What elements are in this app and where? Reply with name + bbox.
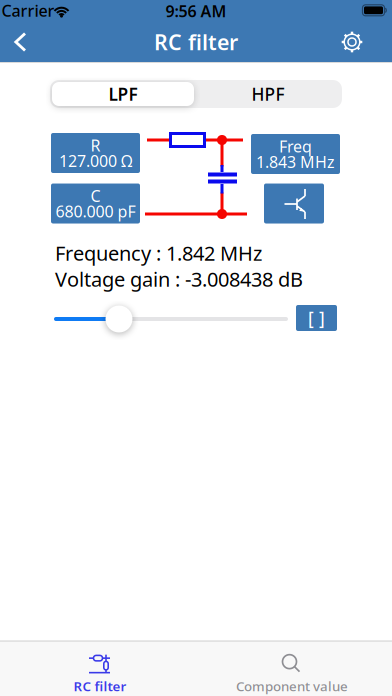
button[interactable]: Settings xyxy=(332,22,372,62)
staticText: 680.000 pF xyxy=(55,201,135,222)
staticText: RC filter xyxy=(154,28,238,56)
staticText: Voltage gain : -3.008438 dB xyxy=(55,266,303,292)
staticText: Freq xyxy=(279,136,312,157)
staticText: Frequency : 1.842 MHz xyxy=(55,240,262,266)
button[interactable]: RC filter xyxy=(20,649,180,696)
button[interactable]: HPF xyxy=(197,82,339,106)
button[interactable]: Component value xyxy=(207,649,377,696)
button[interactable]: R xyxy=(51,133,140,173)
staticText: LPF xyxy=(108,82,137,105)
staticText: C xyxy=(90,185,100,206)
staticText: 1.843 MHz xyxy=(256,151,335,172)
staticText: 127.000 Ω xyxy=(59,150,132,171)
button[interactable]: Back xyxy=(4,22,44,62)
button[interactable]: C xyxy=(51,183,140,223)
button[interactable]: LPF xyxy=(52,82,194,106)
staticText: 9:56 AM xyxy=(165,0,226,22)
staticText: Component value xyxy=(236,677,348,695)
button[interactable]: Transistor xyxy=(264,183,324,223)
staticText: RC filter xyxy=(73,677,126,695)
staticText: R xyxy=(90,135,100,156)
button[interactable]: Freq xyxy=(251,134,340,174)
staticText: Carrier xyxy=(1,0,54,21)
button[interactable]: Frequency slider xyxy=(0,304,340,333)
button[interactable]: Range xyxy=(296,305,337,331)
staticText: [ ] xyxy=(308,306,325,329)
staticText: HPF xyxy=(251,82,284,105)
